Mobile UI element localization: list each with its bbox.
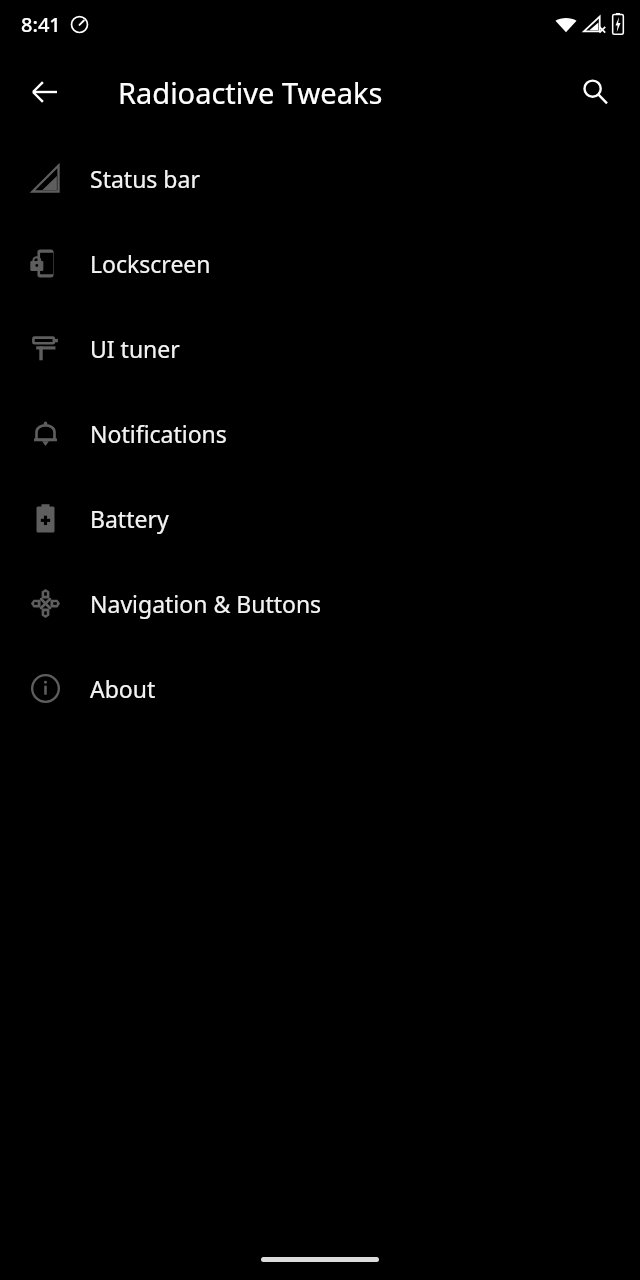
staticText: Notifications: [90, 418, 227, 449]
button[interactable]: UI tuner: [0, 306, 640, 391]
button[interactable]: Battery: [0, 476, 640, 561]
staticText: Status bar: [90, 163, 200, 194]
button[interactable]: About: [0, 646, 640, 731]
staticText: UI tuner: [90, 333, 180, 364]
button[interactable]: Lockscreen: [0, 221, 640, 306]
staticText: 8:41: [21, 11, 61, 38]
staticText: Lockscreen: [90, 248, 211, 279]
staticText: About: [90, 673, 156, 704]
button[interactable]: Status bar: [0, 136, 640, 221]
button[interactable]: Search: [564, 61, 626, 123]
staticText: Radioactive Tweaks: [118, 73, 383, 112]
button[interactable]: Notifications: [0, 391, 640, 476]
button[interactable]: Navigation & Buttons: [0, 561, 640, 646]
staticText: Navigation & Buttons: [90, 588, 322, 619]
staticText: Battery: [90, 503, 169, 534]
button[interactable]: Back: [12, 59, 78, 125]
